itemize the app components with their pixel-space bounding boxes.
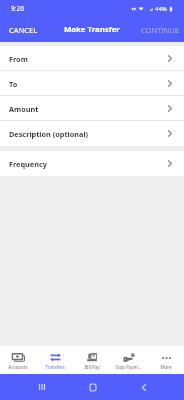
staticText: From — [9, 54, 28, 64]
button[interactable]: Description (optional) — [0, 121, 184, 146]
button[interactable]: More — [147, 346, 184, 374]
staticText: Amount — [9, 104, 39, 114]
button[interactable]: Transfers — [36, 346, 73, 374]
staticText: Description (optional) — [9, 129, 89, 139]
staticText: To — [9, 79, 18, 89]
staticText: Make Transfer — [64, 24, 120, 35]
button[interactable]: From — [0, 46, 184, 71]
button[interactable]: Stop Paym… — [110, 346, 147, 374]
button[interactable]: Frequency — [0, 151, 184, 176]
staticText: Frequency — [9, 159, 47, 169]
staticText: Bill Pay — [84, 364, 100, 370]
button[interactable]: Amount — [0, 96, 184, 121]
staticText: More — [160, 364, 172, 370]
staticText: CANCEL — [9, 25, 38, 35]
button[interactable]: Home — [83, 377, 103, 397]
button[interactable]: To — [0, 71, 184, 96]
staticText: Transfers — [45, 364, 65, 370]
button[interactable]: Accounts — [0, 346, 36, 374]
button[interactable]: CANCEL — [0, 17, 184, 42]
button[interactable]: CONTINUE — [0, 17, 184, 42]
button[interactable]: Bill Pay — [73, 346, 110, 374]
button[interactable]: Back — [134, 377, 154, 397]
button[interactable]: Recent apps — [32, 377, 52, 397]
staticText: Stop Paym… — [115, 364, 142, 370]
staticText: 44% — [155, 5, 167, 13]
staticText: CONTINUE — [141, 25, 180, 35]
staticText: 9:26 — [11, 4, 24, 13]
staticText: Accounts — [8, 364, 28, 370]
